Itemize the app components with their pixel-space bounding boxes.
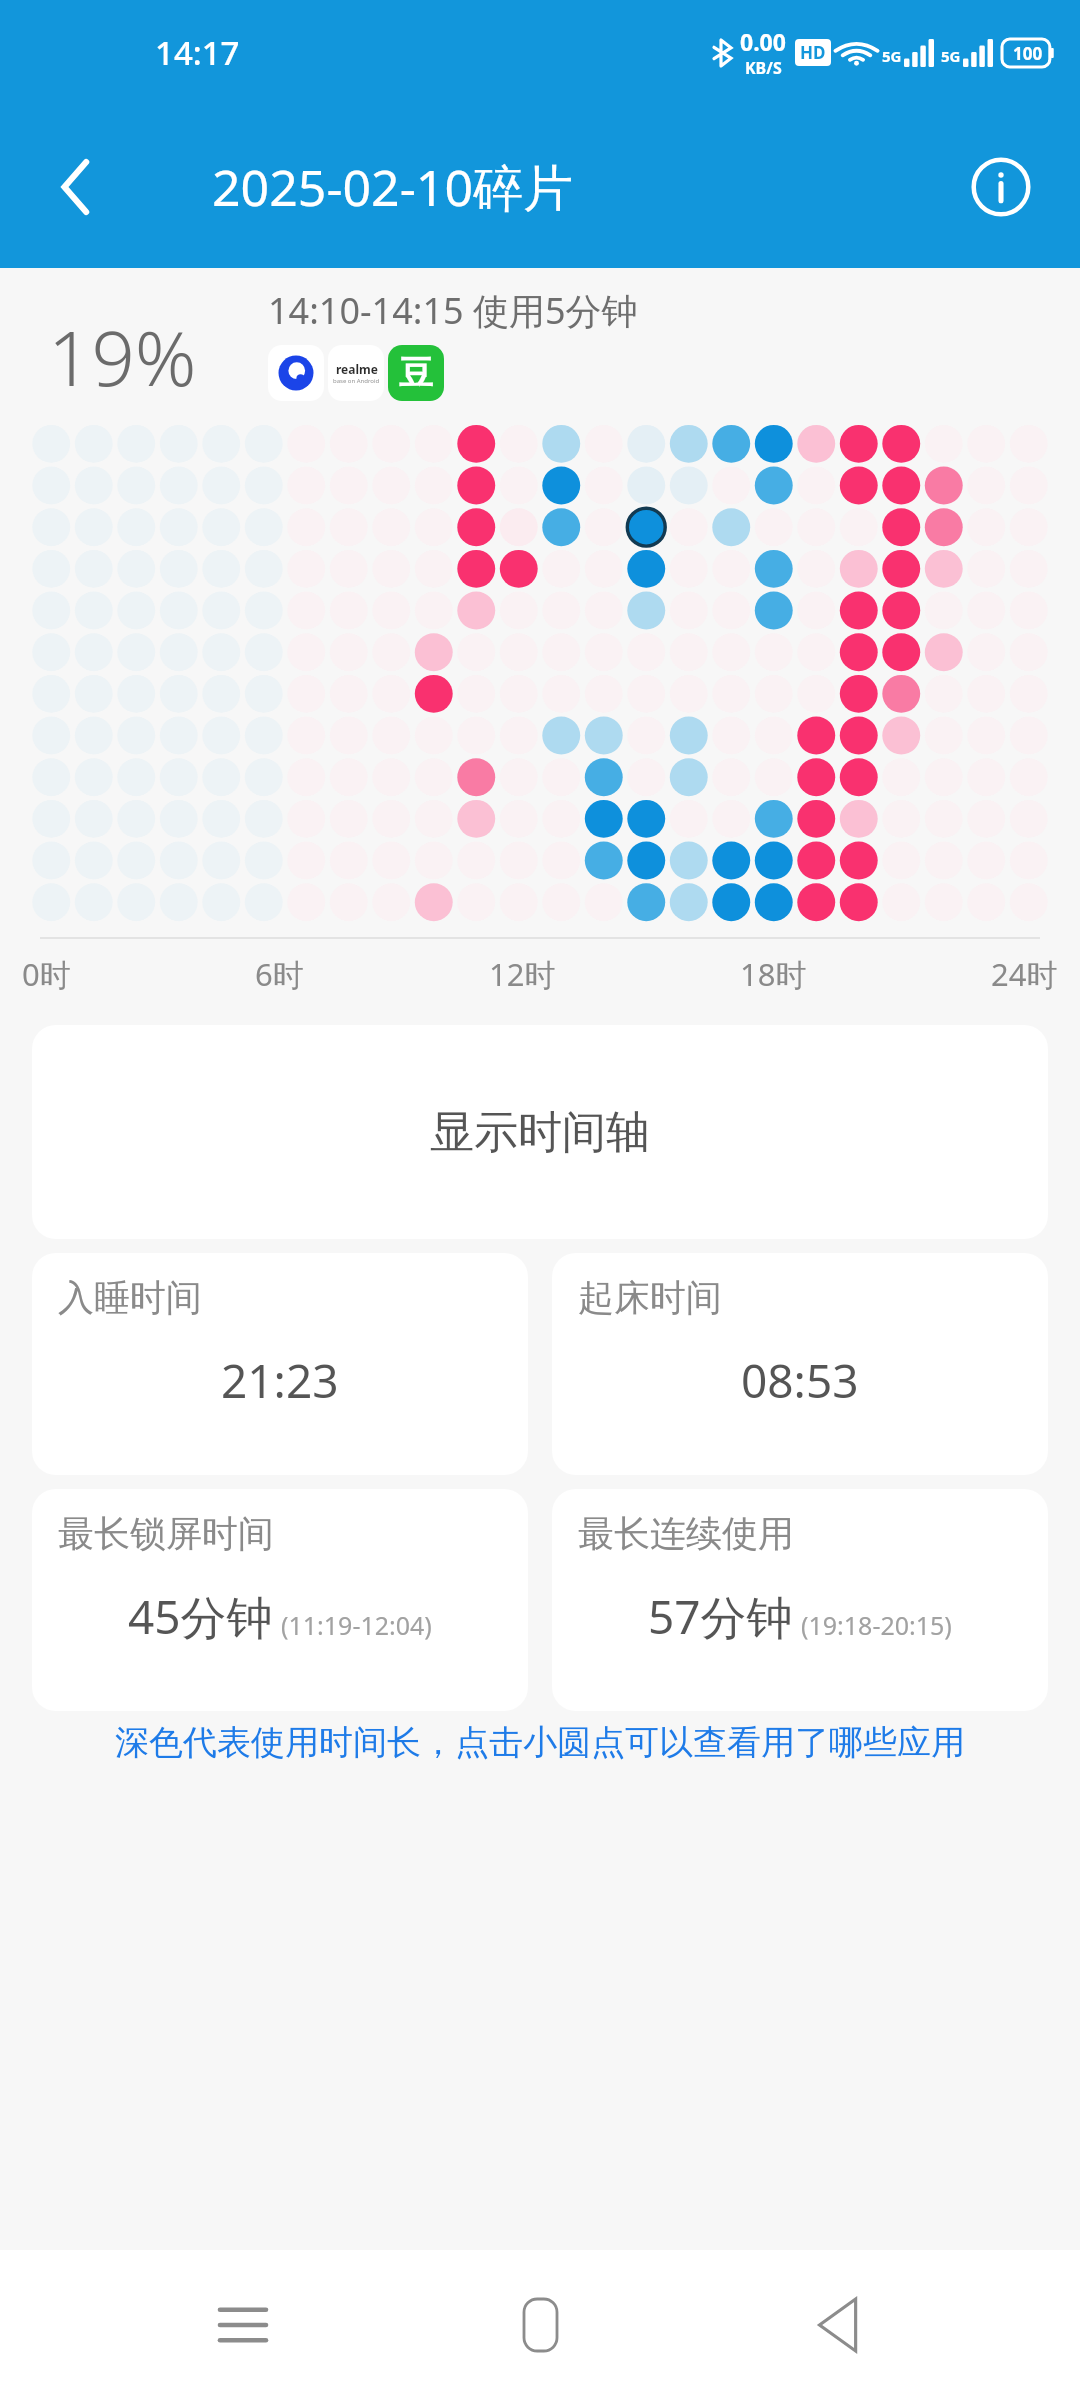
staticText: 深色代表使用时间长，点击小圆点可以查看用了哪些应用 <box>36 1721 1044 1764</box>
button[interactable]: Home <box>485 2270 595 2380</box>
staticText: (19:18-20:15) <box>801 1608 952 1642</box>
staticText: 08:53 <box>741 1349 859 1412</box>
button[interactable]: Back <box>40 151 112 223</box>
button[interactable]: Recent apps <box>188 2270 298 2380</box>
staticText: 12时 <box>489 953 556 995</box>
button[interactable]: 最长连续使用 <box>552 1489 1048 1711</box>
staticText: 18时 <box>740 953 807 995</box>
button[interactable]: 最长锁屏时间 <box>32 1489 528 1711</box>
staticText: 0时 <box>22 953 71 995</box>
staticText: 24时 <box>991 953 1058 995</box>
staticText: KB/S <box>745 57 782 79</box>
staticText: 起床时间 <box>578 1275 722 1320</box>
button[interactable]: Back <box>783 2270 893 2380</box>
staticText: 14:10-14:15 使用5分钟 <box>268 286 638 335</box>
staticText: 2025-02-10碎片 <box>212 153 573 221</box>
button[interactable]: 入睡时间 <box>32 1253 528 1475</box>
staticText: 最长连续使用 <box>578 1511 794 1556</box>
button[interactable]: 起床时间 <box>552 1253 1048 1475</box>
staticText: 5G <box>882 46 902 66</box>
staticText: 100 <box>1013 42 1043 65</box>
button[interactable]: 显示时间轴 <box>32 1025 1048 1239</box>
staticText: base on Android <box>333 377 380 385</box>
staticText: 19% <box>48 305 197 409</box>
staticText: 57分钟 <box>648 1585 793 1648</box>
staticText: 最长锁屏时间 <box>58 1511 274 1556</box>
staticText: 显示时间轴 <box>430 1105 650 1160</box>
button[interactable]: Info <box>962 148 1040 226</box>
staticText: (11:19-12:04) <box>281 1608 432 1642</box>
staticText: realme <box>336 361 378 377</box>
staticText: 入睡时间 <box>58 1275 202 1320</box>
staticText: 0.00 <box>740 26 786 57</box>
staticText: 6时 <box>255 953 304 995</box>
staticText: HD <box>800 41 826 64</box>
staticText: 5G <box>941 46 961 66</box>
staticText: 45分钟 <box>128 1585 273 1648</box>
staticText: 豆 <box>399 352 433 395</box>
staticText: 14:17 <box>155 30 240 75</box>
staticText: 21:23 <box>221 1349 339 1412</box>
